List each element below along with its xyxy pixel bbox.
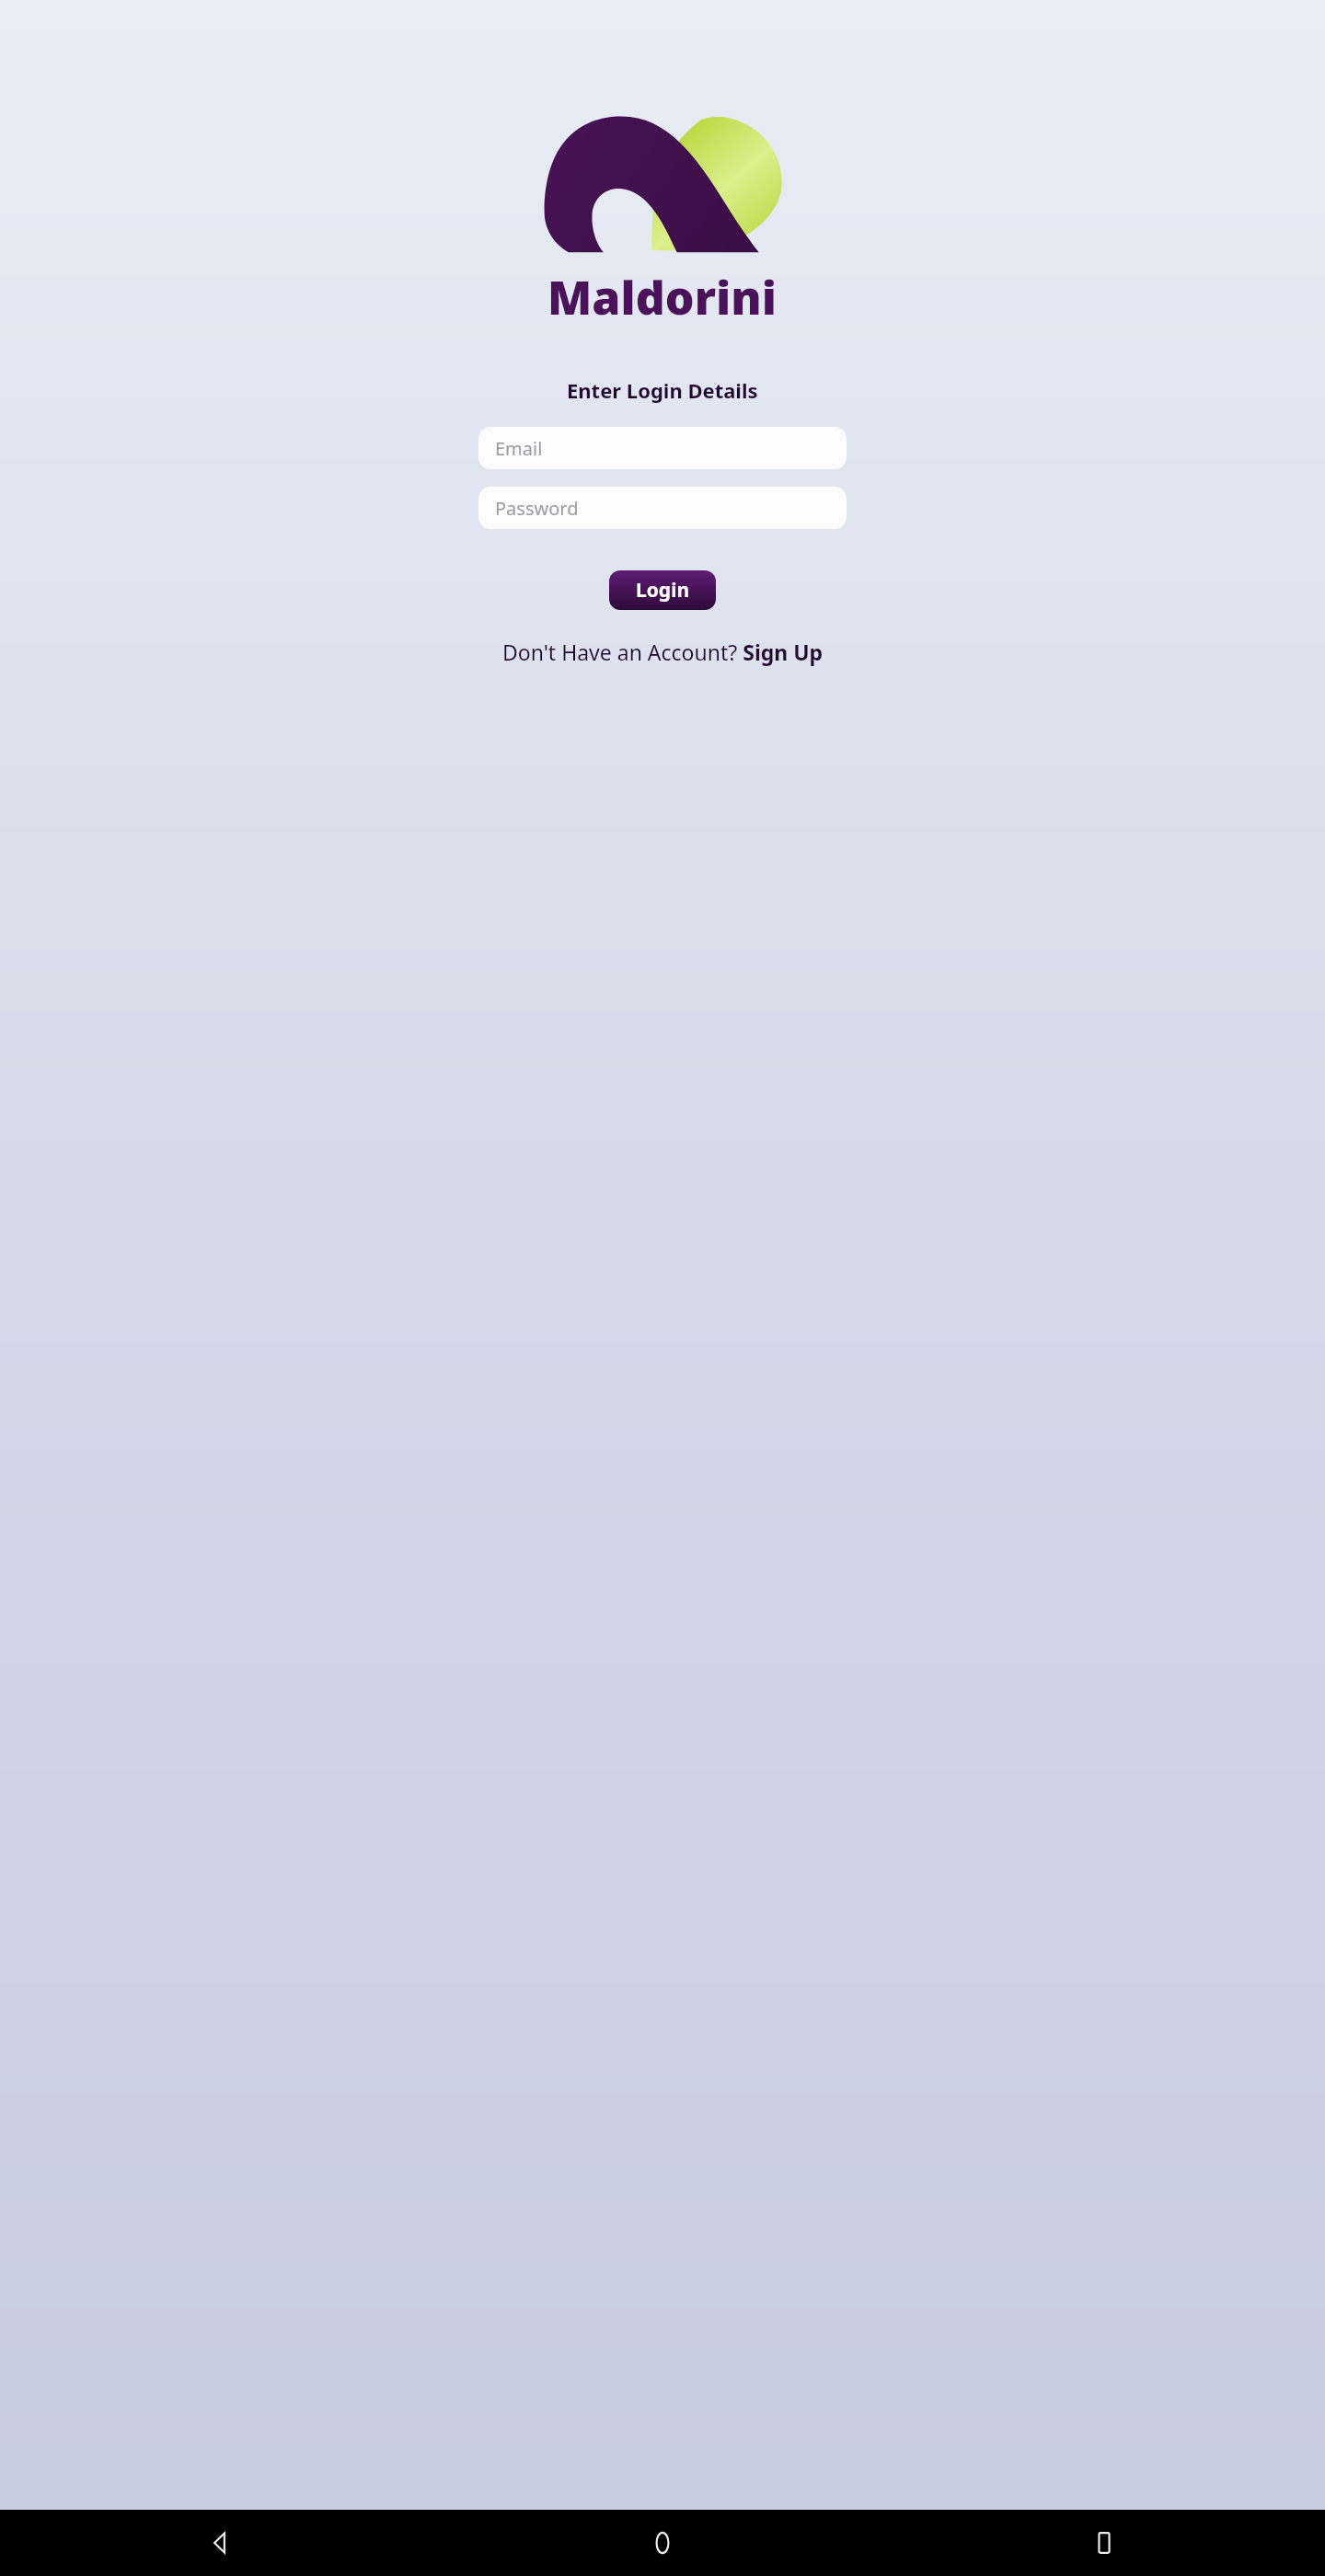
button[interactable]: Password — [478, 487, 847, 529]
button[interactable]: Back — [0, 2510, 442, 2576]
staticText: Enter Login Details — [567, 376, 758, 404]
button[interactable]: Don't Have an Account? Sign Up — [495, 634, 831, 670]
button[interactable]: Home — [442, 2510, 883, 2576]
staticText: Login — [636, 577, 690, 604]
staticText: Don't Have an Account? Sign Up — [502, 638, 824, 666]
button[interactable]: Recent apps — [883, 2510, 1325, 2576]
staticText: Maldorini — [547, 266, 778, 328]
button[interactable]: Login — [609, 570, 716, 610]
button[interactable]: Email — [478, 427, 847, 469]
staticText: Email — [495, 436, 543, 461]
staticText: Password — [495, 496, 579, 521]
